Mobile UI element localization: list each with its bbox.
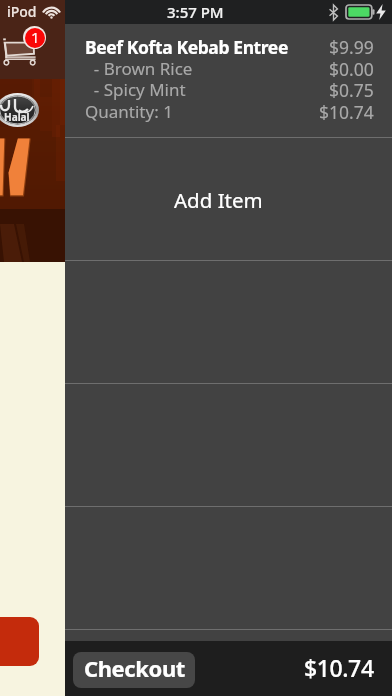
button[interactable]: Add Item: [65, 138, 392, 260]
staticText: - Brown Rice: [85, 57, 193, 80]
staticText: - Spicy Mint: [85, 78, 186, 101]
staticText: $9.99: [329, 35, 374, 59]
button[interactable]: Place order: [0, 617, 39, 666]
button[interactable]: Checkout: [73, 652, 195, 688]
staticText: 1: [31, 28, 40, 47]
staticText: iPod: [7, 2, 37, 21]
staticText: $0.75: [329, 78, 374, 102]
staticText: Checkout: [84, 653, 185, 683]
staticText: $10.74: [319, 100, 374, 124]
staticText: Add Item: [174, 186, 263, 214]
staticText: $10.74: [304, 652, 374, 683]
staticText: $0.00: [329, 57, 374, 81]
button[interactable]: Beef Kofta Kebab Entree: [65, 24, 392, 137]
staticText: 3:57 PM: [167, 2, 224, 22]
staticText: Beef Kofta Kebab Entree: [85, 35, 288, 59]
staticText: Quantity: 1: [85, 100, 173, 123]
staticText: Halal: [4, 110, 30, 124]
